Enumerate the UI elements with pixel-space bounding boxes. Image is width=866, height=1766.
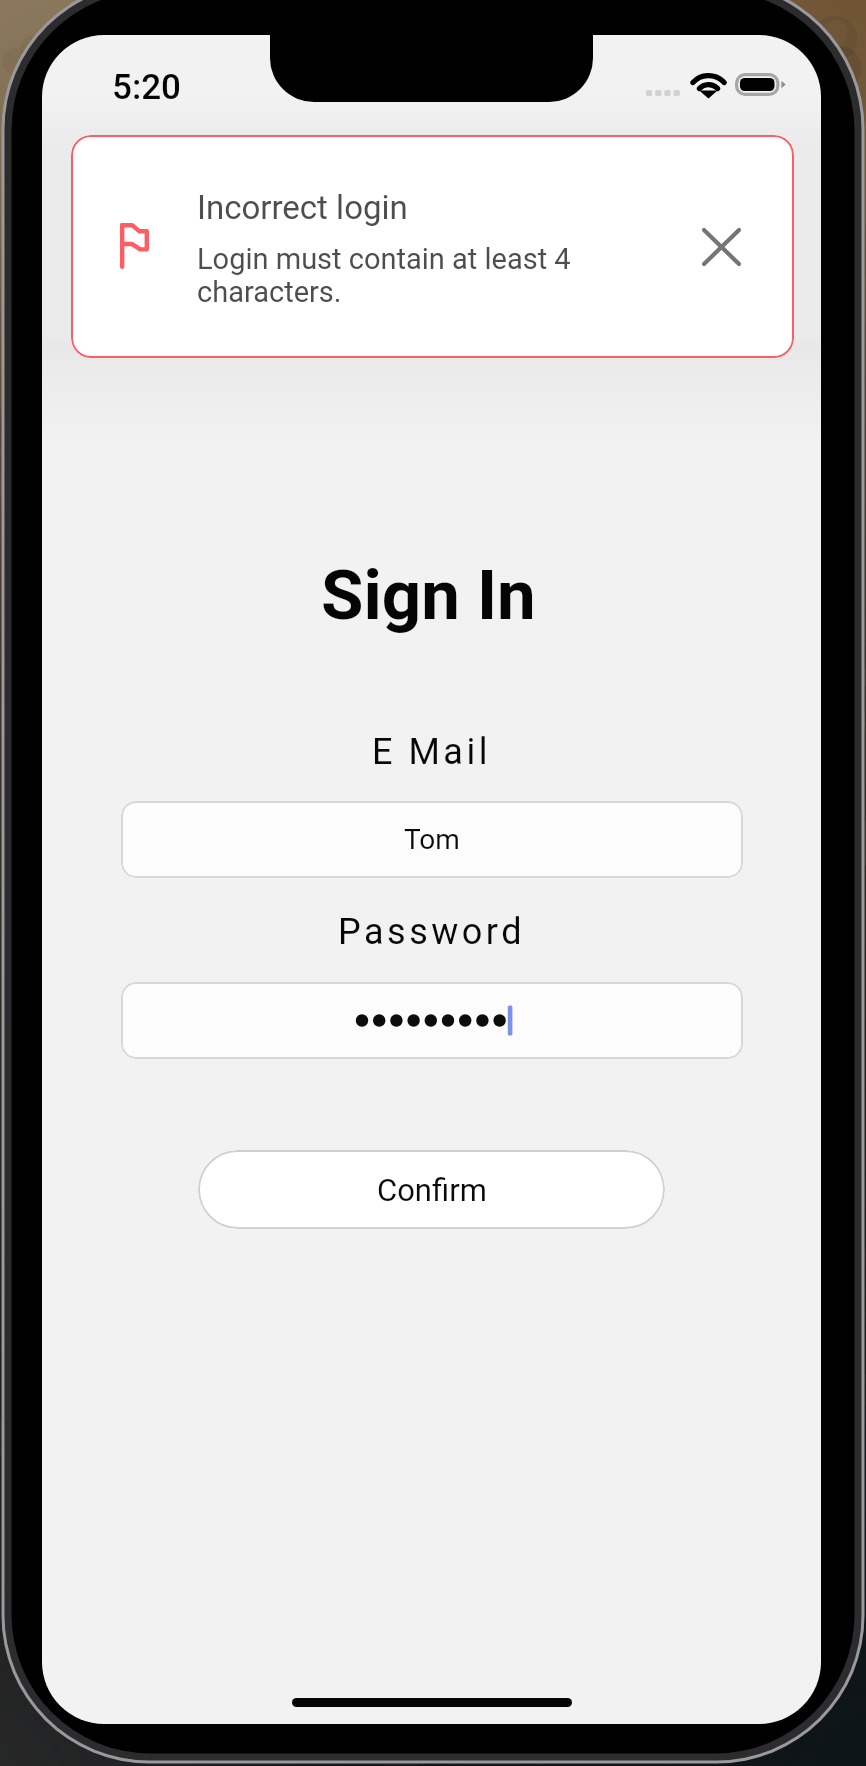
- button[interactable]: Tom: [121, 801, 743, 878]
- staticText: 5:20: [112, 67, 181, 108]
- button[interactable]: Dismiss alert: [684, 210, 758, 284]
- staticText: E Mail: [372, 731, 491, 773]
- staticText: Login must contain at least 4 characters…: [197, 242, 571, 309]
- staticText: Confirm: [377, 1172, 487, 1208]
- button[interactable]: [121, 982, 743, 1059]
- staticText: Incorrect login: [197, 188, 408, 227]
- button[interactable]: Confirm: [198, 1150, 665, 1229]
- staticText: Sign In: [321, 555, 536, 636]
- staticText: Password: [338, 911, 526, 953]
- staticText: Tom: [404, 823, 460, 856]
